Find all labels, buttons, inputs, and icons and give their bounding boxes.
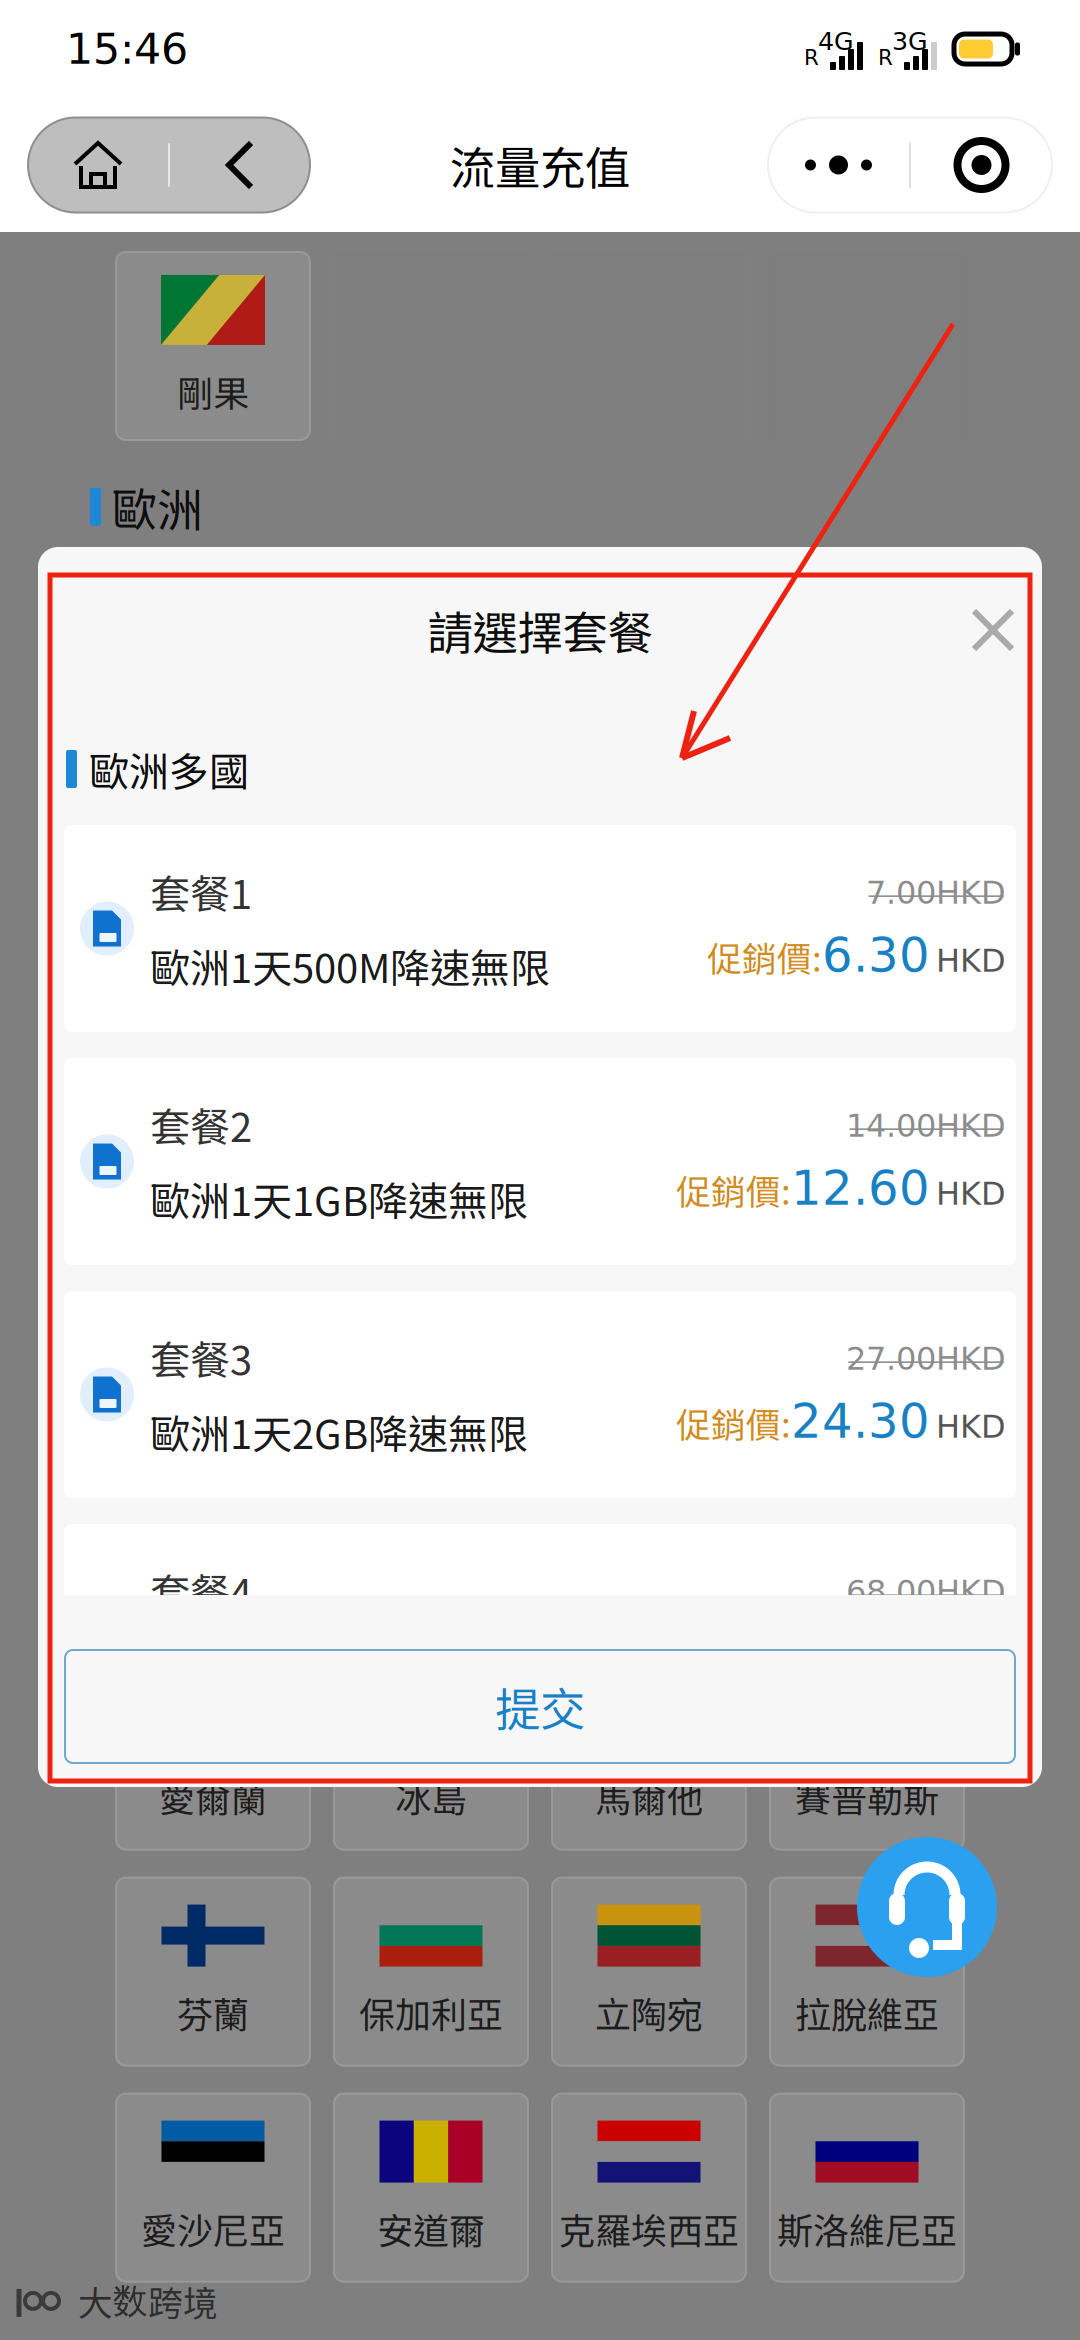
staticText: 保加利亞 [359,1987,503,2039]
staticText: 流量充值 [450,132,630,198]
button[interactable]: 立陶宛 [552,1878,746,2066]
staticText: 12.60 [791,1160,930,1216]
staticText: HKD [930,942,1006,979]
staticText: 4G [818,26,854,56]
button[interactable]: 套餐1 [64,825,1016,1032]
button[interactable]: 芬蘭 [116,1878,310,2066]
staticText: 歐洲多國 [89,740,249,798]
staticText: 賽普勒斯 [795,1771,939,1823]
staticText: 愛爾蘭 [159,1771,267,1823]
staticText: 立陶宛 [595,1987,703,2039]
button[interactable]: 斯洛維尼亞 [770,2094,964,2282]
button[interactable]: 冰島 [334,1662,528,1850]
staticText: 61.20 [791,1626,930,1682]
staticText: 27.00HKD [846,1340,1006,1377]
button[interactable]: 套餐4 [64,1524,1016,1731]
staticText: 68.00HKD [846,1573,1006,1610]
button[interactable]: 賽普勒斯 [770,1662,964,1850]
button[interactable]: 保加利亞 [334,1878,528,2066]
staticText: 剛果 [177,365,249,417]
button[interactable]: 套餐2 [64,1058,1016,1265]
staticText: 芬蘭 [177,1987,249,2039]
staticText: 克羅埃西亞 [559,2203,739,2255]
button[interactable]: Home and Back [28,117,310,212]
staticText: HKD [930,1175,1006,1212]
staticText: 歐洲 [112,474,202,540]
staticText: 14.00HKD [846,1107,1006,1144]
staticText: 歐洲1天500M降速無限 [150,936,550,994]
button[interactable]: Close [956,593,1030,667]
staticText: R [878,45,893,70]
button[interactable]: 克羅埃西亞 [552,2094,746,2282]
staticText: 7.00HKD [866,874,1006,911]
button[interactable]: 拉脫維亞 [770,1878,964,2066]
staticText: 拉脫維亞 [795,1987,939,2039]
staticText: 斯洛維尼亞 [777,2203,957,2255]
staticText: 3G [892,26,928,56]
button[interactable]: 愛沙尼亞 [116,2094,310,2282]
staticText: 歐洲1天2GB降速無限 [150,1402,528,1460]
staticText: 馬爾他 [595,1771,703,1823]
staticText: 歐洲1天3GB降速無限 [150,1635,528,1693]
staticText: 請選擇套餐 [427,597,652,663]
staticText: 提交 [495,1674,585,1739]
staticText: 促銷價: [676,1397,791,1448]
button[interactable]: More options and Close [768,117,1052,212]
button[interactable]: 愛爾蘭 [116,1662,310,1850]
staticText: R [804,45,819,70]
staticText: 24.30 [791,1393,930,1449]
button[interactable]: 套餐3 [64,1291,1016,1498]
staticText: 安道爾 [377,2203,485,2255]
staticText: 促銷價: [707,931,822,982]
staticText: 套餐1 [150,863,252,920]
button[interactable]: 安道爾 [334,2094,528,2282]
staticText: 促銷價: [676,1164,791,1215]
staticText: 促銷價: [676,1630,791,1681]
staticText: 套餐3 [150,1329,252,1386]
button[interactable]: 馬爾他 [552,1662,746,1850]
staticText: 歐洲1天1GB降速無限 [150,1169,528,1227]
staticText: 冰島 [395,1771,467,1823]
staticText: 大数跨境 [78,2276,218,2326]
staticText: HKD [930,1641,1006,1678]
staticText: HKD [930,1408,1006,1445]
button[interactable]: Customer support [857,1837,997,1977]
staticText: 15:46 [66,24,188,74]
button[interactable]: 剛果 [116,252,310,440]
staticText: 套餐2 [150,1096,252,1153]
staticText: 6.30 [822,927,930,983]
button[interactable]: 提交 [65,1650,1015,1763]
staticText: 套餐4 [150,1562,252,1619]
staticText: 愛沙尼亞 [141,2203,285,2255]
